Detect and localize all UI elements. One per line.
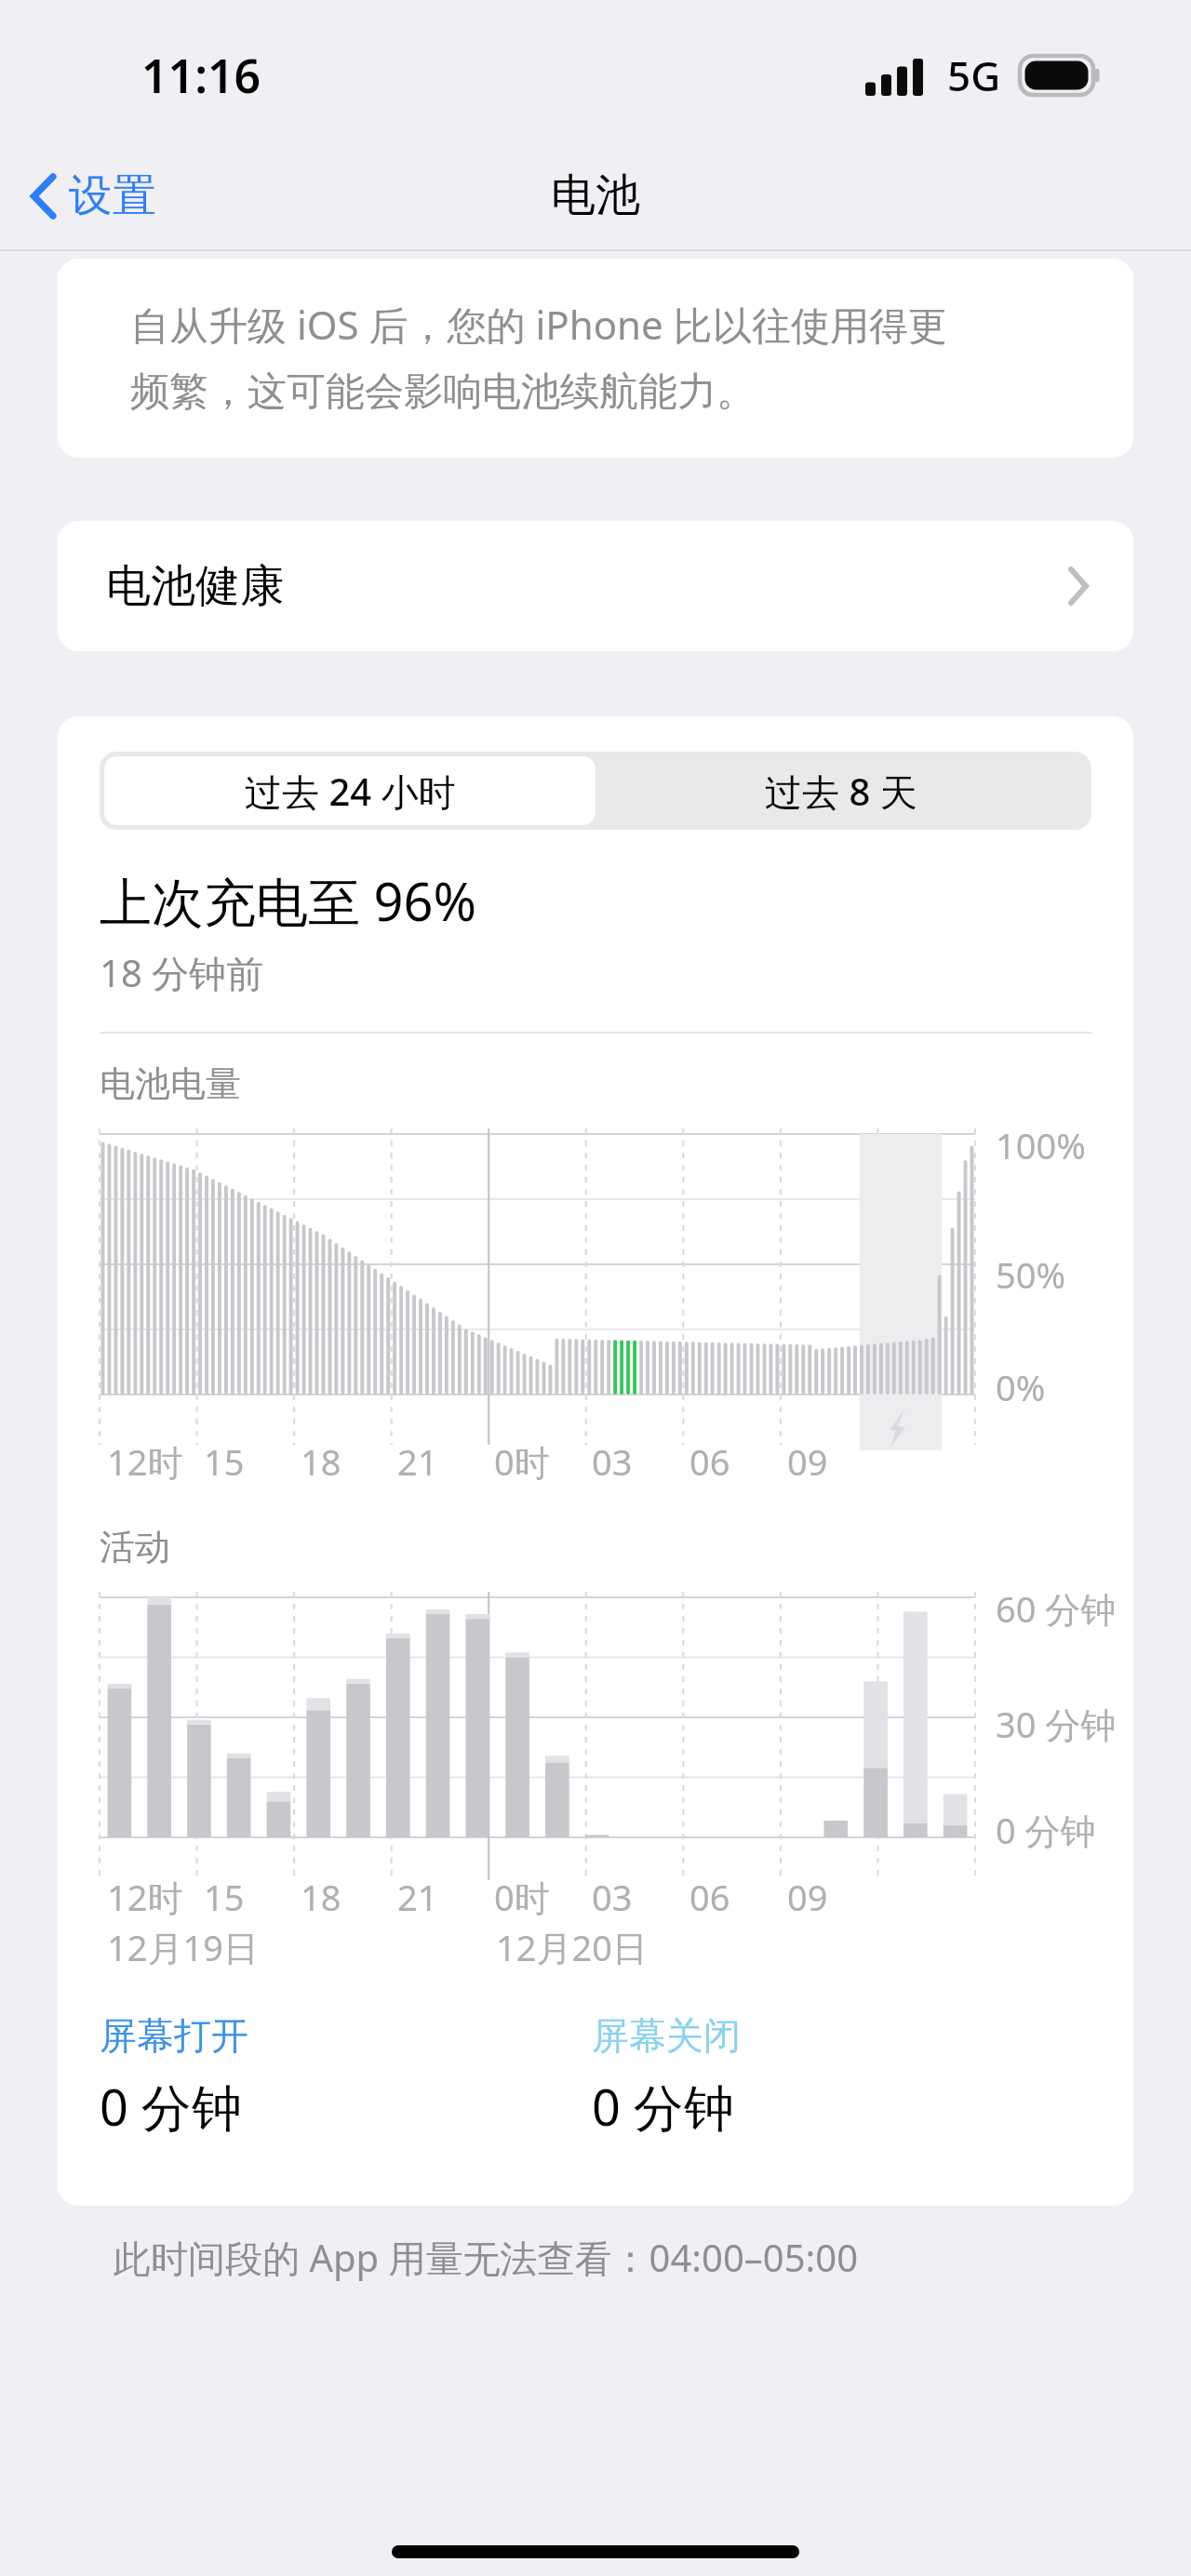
staticText: 活动 — [100, 1525, 170, 1569]
staticText: 18 — [301, 1873, 341, 1921]
button[interactable]: 屏幕关闭 — [592, 2012, 1133, 2141]
staticText: 5G — [947, 47, 1001, 103]
staticText: 12月20日 — [496, 1923, 648, 1971]
staticText: 12月19日 — [107, 1923, 259, 1971]
staticText: 09 — [787, 1437, 828, 1486]
staticText: 电池 — [551, 167, 640, 223]
button[interactable]: 电池健康 — [58, 521, 1133, 651]
staticText: 15 — [204, 1437, 245, 1486]
staticText: 06 — [689, 1437, 730, 1486]
staticText: 0时 — [494, 1873, 550, 1921]
staticText: 09 — [787, 1873, 828, 1921]
staticText: 18 分钟前 — [100, 947, 264, 998]
staticText: 12时 — [107, 1873, 183, 1921]
staticText: 上次充电至 96% — [100, 865, 477, 936]
staticText: 屏幕打开 — [100, 2012, 248, 2059]
button[interactable]: 屏幕打开 — [100, 2012, 592, 2141]
staticText: 15 — [204, 1873, 245, 1921]
staticText: 频繁，这可能会影响电池续航能力。 — [130, 367, 756, 417]
staticText: 60 分钟 — [996, 1584, 1117, 1633]
staticText: 0时 — [494, 1437, 550, 1486]
staticText: 30 分钟 — [996, 1700, 1117, 1748]
staticText: 电池健康 — [106, 558, 285, 614]
staticText: 11:16 — [141, 44, 261, 107]
staticText: 21 — [397, 1873, 438, 1921]
staticText: 0 分钟 — [592, 2072, 734, 2141]
staticText: 06 — [689, 1873, 730, 1921]
staticText: 电池电量 — [100, 1061, 241, 1106]
staticText: 过去 8 天 — [765, 766, 917, 817]
staticText: 自从升级 iOS 后，您的 iPhone 比以往使用得更 — [130, 298, 947, 351]
staticText: 0 分钟 — [996, 1806, 1096, 1854]
staticText: 0 分钟 — [100, 2072, 242, 2141]
staticText: 21 — [397, 1437, 438, 1486]
staticText: 此时间段的 App 用量无法查看：04:00–05:00 — [114, 2232, 859, 2283]
staticText: 12时 — [107, 1437, 183, 1486]
staticText: 18 — [301, 1437, 341, 1486]
staticText: 03 — [592, 1873, 633, 1921]
staticText: 50% — [996, 1250, 1066, 1299]
button[interactable]: 设置 — [0, 159, 173, 233]
staticText: 设置 — [69, 168, 156, 223]
staticText: 03 — [592, 1437, 633, 1486]
staticText: 0% — [996, 1363, 1046, 1411]
staticText: 屏幕关闭 — [592, 2012, 741, 2059]
button[interactable]: 过去 24 小时 — [104, 756, 595, 825]
staticText: 过去 24 小时 — [245, 766, 456, 817]
button[interactable]: 过去 8 天 — [595, 756, 1087, 825]
staticText: 100% — [996, 1121, 1086, 1169]
